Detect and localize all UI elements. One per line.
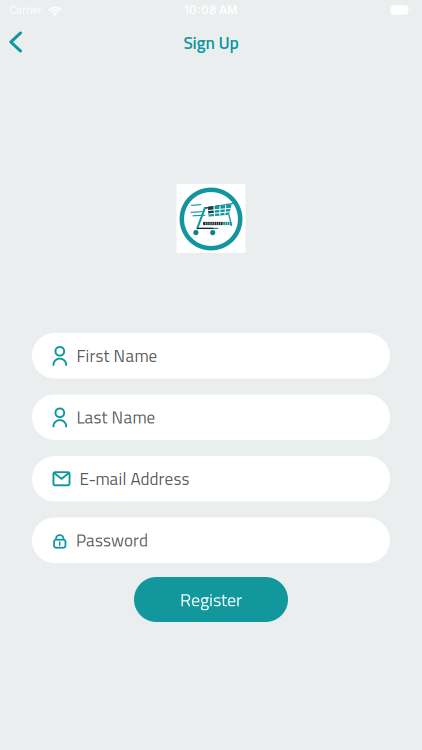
staticText: 10:08 AM <box>184 3 238 17</box>
button[interactable]: Last Name <box>32 394 390 440</box>
button[interactable]: E-mail Address <box>32 456 390 501</box>
staticText: Last Name <box>76 404 155 430</box>
staticText: Sign Up <box>183 29 238 56</box>
staticText: Password <box>76 527 148 553</box>
staticText: E-mail Address <box>79 466 189 492</box>
staticText: Carrier <box>9 4 42 16</box>
button[interactable]: Password <box>32 517 390 563</box>
button[interactable]: First Name <box>32 333 390 378</box>
button[interactable] <box>0 20 22 63</box>
staticText: Register <box>180 586 242 613</box>
button[interactable]: Register <box>134 577 288 622</box>
staticText: First Name <box>76 343 157 369</box>
